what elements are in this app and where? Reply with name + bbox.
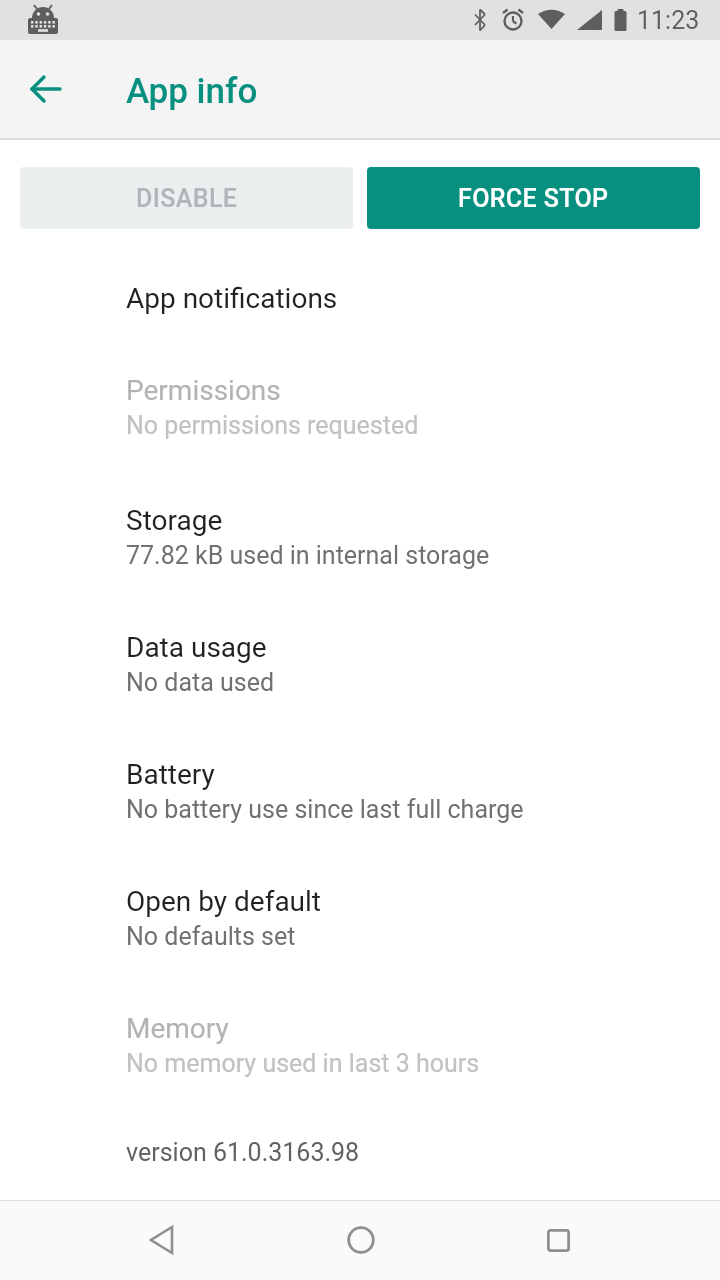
- button[interactable]: Permissions: [0, 343, 720, 470]
- button[interactable]: Storage: [0, 473, 720, 600]
- button[interactable]: Memory: [0, 981, 720, 1108]
- staticText: version 61.0.3163.98: [126, 1138, 360, 1167]
- button[interactable]: DISABLE: [20, 167, 353, 229]
- button[interactable]: App notifications: [0, 250, 720, 346]
- staticText: App info: [126, 71, 258, 112]
- staticText: No battery use since last full charge: [126, 795, 524, 824]
- staticText: No permissions requested: [126, 411, 419, 440]
- button[interactable]: [321, 1200, 401, 1280]
- staticText: Data usage: [126, 631, 267, 664]
- staticText: Open by default: [126, 885, 322, 918]
- button[interactable]: Open by default: [0, 854, 720, 981]
- staticText: 77.82 kB used in internal storage: [126, 541, 490, 570]
- staticText: No memory used in last 3 hours: [126, 1049, 480, 1078]
- button[interactable]: FORCE STOP: [367, 167, 700, 229]
- staticText: Memory: [126, 1012, 229, 1045]
- staticText: 11:23: [637, 6, 700, 35]
- staticText: Storage: [126, 504, 223, 537]
- staticText: No data used: [126, 668, 275, 697]
- button[interactable]: Data usage: [0, 600, 720, 727]
- button[interactable]: [20, 63, 72, 115]
- staticText: App notifications: [126, 282, 338, 315]
- staticText: FORCE STOP: [458, 184, 609, 213]
- staticText: No defaults set: [126, 922, 296, 951]
- button[interactable]: [121, 1200, 201, 1280]
- button[interactable]: [518, 1200, 598, 1280]
- staticText: Battery: [126, 758, 215, 791]
- button[interactable]: Battery: [0, 727, 720, 854]
- staticText: Permissions: [126, 374, 281, 407]
- button[interactable]: version 61.0.3163.98: [0, 1124, 720, 1180]
- staticText: DISABLE: [136, 184, 238, 213]
